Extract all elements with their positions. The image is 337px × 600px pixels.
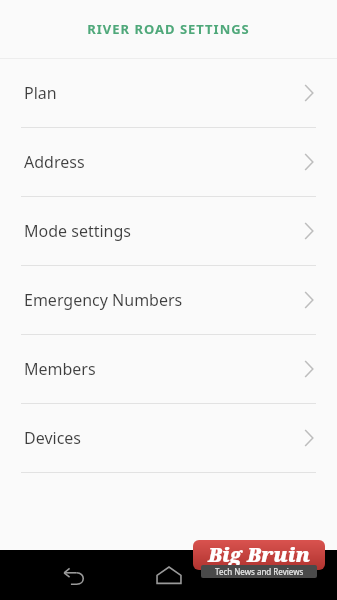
button[interactable]: Members (0, 335, 337, 403)
staticText: Devices (24, 427, 82, 449)
staticText: Plan (24, 82, 57, 104)
staticText: RIVER ROAD SETTINGS (87, 20, 250, 38)
button[interactable]: Mode settings (0, 197, 337, 265)
button[interactable]: Plan (0, 59, 337, 127)
button[interactable]: Devices (0, 404, 337, 472)
staticText: Big Bruin (208, 541, 311, 568)
staticText: Tech News and Reviews (215, 566, 304, 577)
button[interactable]: Home (145, 551, 193, 599)
button[interactable]: Back (50, 551, 98, 599)
staticText: Members (24, 358, 96, 380)
staticText: Mode settings (24, 220, 131, 242)
staticText: Address (24, 151, 85, 173)
button[interactable]: Address (0, 128, 337, 196)
button[interactable]: Emergency Numbers (0, 266, 337, 334)
staticText: Emergency Numbers (24, 289, 183, 311)
